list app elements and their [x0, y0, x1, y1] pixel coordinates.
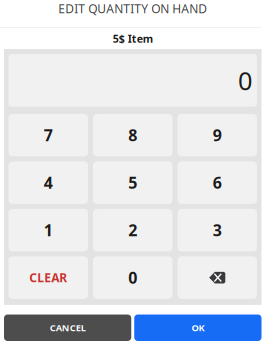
button[interactable]: OK: [134, 314, 261, 341]
staticText: 8: [128, 124, 137, 146]
staticText: 0: [128, 267, 137, 288]
button[interactable]: 8: [93, 114, 172, 156]
button[interactable]: 0: [93, 256, 172, 299]
button[interactable]: 1: [8, 209, 88, 251]
staticText: CLEAR: [29, 270, 67, 286]
button[interactable]: CLEAR: [8, 256, 88, 299]
button[interactable]: 4: [8, 161, 88, 204]
button[interactable]: 9: [177, 114, 257, 156]
staticText: OK: [191, 322, 204, 334]
button[interactable]: 5: [93, 161, 172, 204]
button[interactable]: CANCEL: [4, 314, 131, 341]
button[interactable]: 6: [177, 161, 257, 204]
button[interactable]: Delete: [177, 256, 257, 299]
staticText: 1: [44, 219, 53, 241]
staticText: 5: [128, 172, 137, 193]
staticText: 2: [128, 219, 137, 241]
button[interactable]: 2: [93, 209, 172, 251]
staticText: 7: [44, 124, 53, 146]
staticText: 5$ Item: [113, 31, 153, 46]
staticText: 6: [213, 172, 222, 193]
staticText: 3: [213, 219, 222, 241]
staticText: 0: [238, 63, 252, 97]
staticText: CANCEL: [50, 322, 86, 334]
button[interactable]: 7: [8, 114, 88, 156]
staticText: 4: [44, 172, 53, 193]
button[interactable]: 3: [177, 209, 257, 251]
staticText: 9: [213, 124, 222, 146]
staticText: EDIT QUANTITY ON HAND: [58, 0, 207, 16]
